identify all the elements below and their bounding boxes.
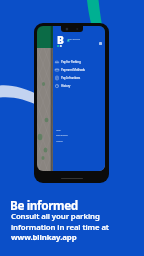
button[interactable]: Logout bbox=[56, 139, 105, 144]
staticText: Consult all your parking information in … bbox=[11, 211, 109, 233]
button[interactable]: Notifications bbox=[99, 42, 102, 45]
button[interactable]: Rate Blinkay bbox=[56, 133, 105, 138]
staticText: B bbox=[57, 33, 64, 47]
button[interactable]: Pay Infractions bbox=[55, 75, 105, 81]
staticText: Payment Methods bbox=[61, 68, 85, 72]
button[interactable]: Help bbox=[56, 128, 105, 133]
staticText: Be informed bbox=[10, 197, 78, 213]
staticText: Pay for Parking bbox=[61, 60, 81, 64]
staticText: Help bbox=[56, 129, 61, 132]
staticText: www.blinkay.app bbox=[11, 232, 77, 243]
staticText: Pay Infractions bbox=[61, 76, 81, 80]
button[interactable]: Pay for Parking bbox=[55, 59, 105, 65]
button[interactable]: Payment Methods bbox=[55, 67, 105, 73]
staticText: Rate Blinkay bbox=[56, 134, 68, 137]
staticText: My account bbox=[69, 38, 80, 41]
staticText: Logout bbox=[56, 140, 63, 143]
button[interactable]: History bbox=[55, 83, 105, 89]
staticText: History bbox=[61, 84, 71, 88]
